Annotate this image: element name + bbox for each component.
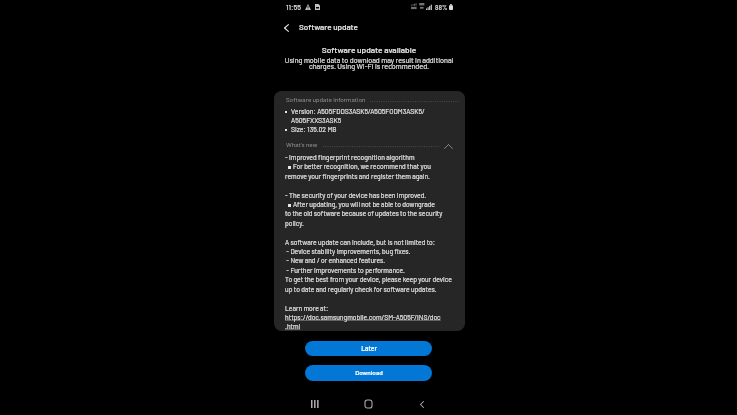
staticText: up to date and regularly check for softw…	[285, 285, 437, 293]
staticText: - Device stability improvements, bug fix…	[285, 247, 411, 255]
staticText: What's new	[286, 141, 318, 149]
staticText: 11:55	[286, 3, 301, 12]
staticText: remove your fingerprints and register th…	[285, 172, 430, 180]
staticText: - The security of your device has been i…	[285, 191, 427, 199]
staticText: https://doc.samsungmobile.com/SM-A505F/I…	[285, 313, 441, 321]
staticText: A505FXXS3ASK5	[291, 116, 342, 124]
staticText: Version: A505FDDS3ASK5/A505FODM3ASK5/	[291, 107, 425, 115]
button[interactable]	[305, 341, 432, 356]
button[interactable]: Navigate up	[276, 18, 296, 38]
staticText: .html	[285, 322, 301, 330]
button[interactable]: Back	[410, 392, 434, 415]
staticText: 88%	[435, 3, 448, 11]
button[interactable]: Home	[356, 392, 380, 415]
staticText: Download	[309, 369, 429, 377]
button[interactable]: Collapse What's new	[439, 137, 457, 156]
staticText: to the old software because of updates t…	[285, 209, 443, 217]
staticText: - New and / or enhanced features.	[285, 256, 386, 264]
staticText: For better recognition, we recommend tha…	[293, 162, 431, 170]
staticText: Using mobile data to download may result…	[269, 56, 469, 71]
staticText: A software update can include, but is no…	[285, 238, 436, 246]
staticText: policy.	[285, 219, 304, 227]
button[interactable]	[305, 365, 432, 381]
staticText: Software update information	[286, 96, 366, 104]
staticText: Later	[309, 344, 429, 352]
staticText: Learn more at:	[285, 304, 329, 312]
staticText: Software update available	[269, 45, 469, 55]
staticText: - Further improvements to performance.	[285, 266, 405, 274]
staticText: - Improved fingerprint recognition algor…	[285, 153, 415, 161]
staticText: Software update	[299, 22, 358, 32]
staticText: After updating, you will not be able to …	[293, 200, 435, 208]
staticText: To get the best from your device, please…	[285, 275, 452, 283]
button[interactable]: Recent apps	[303, 392, 327, 415]
staticText: Size: 135.02 MB	[291, 125, 337, 133]
